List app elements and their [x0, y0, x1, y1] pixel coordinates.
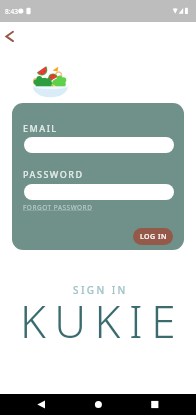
- button[interactable]: LOG IN: [133, 228, 173, 245]
- button[interactable]: FORGOT PASSWORD: [23, 203, 93, 212]
- staticText: PASSWORD: [23, 168, 84, 180]
- staticText: EMAIL: [23, 122, 58, 134]
- staticText: 8:43: [5, 7, 18, 16]
- staticText: KUKIE: [20, 291, 184, 351]
- button[interactable]: [24, 184, 174, 200]
- button[interactable]: [24, 137, 174, 153]
- button[interactable]: Back: [1, 25, 23, 47]
- staticText: FORGOT PASSWORD: [23, 203, 93, 212]
- staticText: LOG IN: [140, 232, 167, 242]
- staticText: SIGN IN: [73, 283, 128, 297]
